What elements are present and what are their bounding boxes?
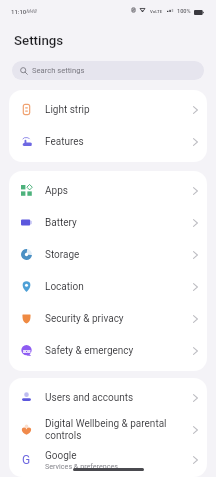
button[interactable]: G — [9, 446, 207, 473]
staticText: 100% — [177, 8, 191, 15]
button[interactable]: Digital Wellbeing & parental controls — [9, 414, 207, 446]
staticText: Services & preferences — [45, 462, 119, 470]
staticText: Storage — [45, 249, 80, 261]
staticText: Search settings — [32, 66, 85, 75]
staticText: SOS — [23, 349, 31, 353]
button[interactable]: SOS — [9, 335, 207, 367]
button[interactable]: Search settings — [12, 61, 204, 80]
button[interactable]: Security & privacy — [9, 303, 207, 335]
button[interactable]: Storage — [9, 239, 207, 271]
staticText: Digital Wellbeing & parental controls — [45, 418, 187, 442]
button[interactable]: Location — [9, 271, 207, 303]
staticText: M48 — [26, 8, 37, 14]
staticText: Google — [45, 450, 77, 462]
button[interactable]: Features — [9, 126, 207, 158]
staticText: Location — [45, 281, 84, 293]
staticText: Light strip — [45, 104, 90, 116]
button[interactable]: Light strip — [9, 94, 207, 126]
staticText: Features — [45, 136, 84, 148]
button[interactable]: Users and accounts — [9, 382, 207, 414]
staticText: Safety & emergency — [45, 345, 134, 357]
staticText: 11:10 — [11, 8, 27, 15]
staticText: Apps — [45, 185, 68, 197]
button[interactable]: Apps — [9, 175, 207, 207]
staticText: Battery — [45, 217, 77, 229]
staticText: Security & privacy — [45, 313, 124, 325]
staticText: Settings — [14, 33, 64, 49]
staticText: G — [22, 453, 31, 464]
staticText: Users and accounts — [45, 392, 134, 404]
staticText: VoLTE — [150, 9, 163, 14]
button[interactable]: Battery — [9, 207, 207, 239]
